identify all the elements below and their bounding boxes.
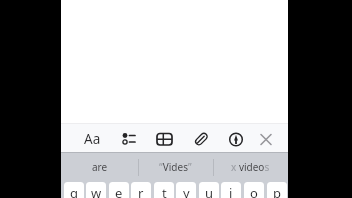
button[interactable]: are (61, 153, 138, 181)
button[interactable] (255, 129, 277, 150)
button[interactable]: y (176, 182, 196, 198)
staticText: r (138, 184, 144, 198)
button[interactable]: p (267, 182, 287, 198)
button[interactable]: w (86, 182, 106, 198)
staticText: x videos (231, 160, 270, 174)
staticText: w (91, 184, 102, 198)
staticText: Aa (84, 130, 101, 148)
staticText: t (162, 184, 167, 198)
button[interactable]: o (244, 182, 264, 198)
staticText: o (250, 184, 258, 198)
staticText: i (229, 184, 233, 198)
staticText: u (205, 184, 214, 198)
button[interactable]: q (64, 182, 84, 198)
button[interactable]: Aa (79, 126, 105, 152)
staticText: y (183, 184, 190, 198)
staticText: “Vides” (159, 160, 192, 174)
staticText: e (115, 184, 123, 198)
button[interactable] (154, 129, 175, 149)
staticText: p (273, 184, 281, 198)
staticText: are (92, 160, 108, 174)
button[interactable] (118, 129, 139, 149)
button[interactable]: “Vides” (138, 153, 213, 181)
button[interactable] (225, 129, 247, 150)
button[interactable] (190, 129, 212, 150)
button[interactable]: i (221, 182, 241, 198)
button[interactable]: r (131, 182, 151, 198)
button[interactable]: e (109, 182, 129, 198)
button[interactable]: u (199, 182, 219, 198)
staticText: q (70, 184, 78, 198)
button[interactable]: t (154, 182, 174, 198)
button[interactable]: x videos (213, 153, 288, 181)
